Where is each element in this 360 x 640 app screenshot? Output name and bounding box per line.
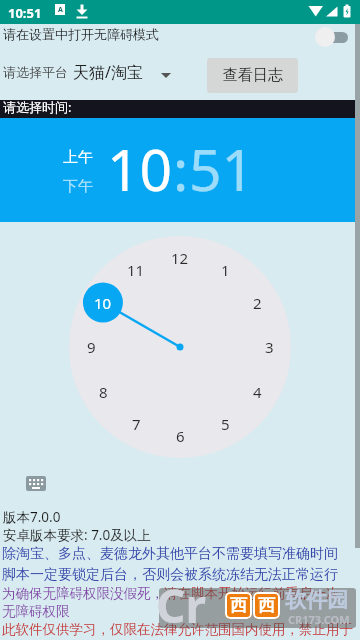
staticText: 3 xyxy=(265,337,274,357)
button[interactable]: 7 xyxy=(122,412,150,436)
button[interactable]: 下午 xyxy=(0,0,30,19)
staticText: 软件园 xyxy=(285,587,348,613)
button[interactable]: 4 xyxy=(243,380,271,404)
staticText: 除淘宝、多点、麦德龙外其他平台不需要填写准确时间 xyxy=(2,545,338,563)
staticText: 10 xyxy=(94,293,112,313)
staticText: 12 xyxy=(171,248,189,268)
staticText: 5 xyxy=(221,414,230,434)
button[interactable] xyxy=(310,24,355,50)
staticText: 为确保无障碍权限没假死，请在脚本开始运行前重启一次 xyxy=(2,585,340,602)
button[interactable]: 9 xyxy=(77,335,105,359)
button[interactable]: 8 xyxy=(89,380,117,404)
staticText: 11 xyxy=(127,260,145,280)
staticText: CR173.COM xyxy=(288,612,350,627)
staticText: 2 xyxy=(253,293,262,313)
button[interactable]: 查看日志 xyxy=(207,58,298,93)
staticText: 7 xyxy=(132,414,141,434)
staticText: 6 xyxy=(176,426,185,446)
button[interactable]: 天猫/淘宝 xyxy=(70,56,180,90)
button[interactable]: 11 xyxy=(122,258,150,282)
staticText: : xyxy=(173,130,189,208)
staticText: 无障碍权限 xyxy=(2,603,70,620)
staticText: 4 xyxy=(253,382,262,402)
staticText: 版本7.0.0 xyxy=(3,508,61,526)
button[interactable]: 10 xyxy=(107,130,173,208)
staticText: 请在设置中打开无障碍模式 xyxy=(3,26,159,42)
staticText: 请选择平台 xyxy=(3,64,68,80)
button[interactable]: 10 xyxy=(89,291,117,315)
staticText: 此软件仅供学习，仅限在法律允许范围国内使用，禁止用于 xyxy=(2,621,353,638)
button[interactable]: 2 xyxy=(243,291,271,315)
button[interactable]: 1 xyxy=(211,258,239,282)
button[interactable]: 上午 xyxy=(0,0,30,19)
staticText: 查看日志 xyxy=(223,66,283,85)
staticText: 西 xyxy=(258,595,275,616)
button[interactable]: 12 xyxy=(166,246,194,270)
button[interactable]: 5 xyxy=(211,412,239,436)
button[interactable]: 51 xyxy=(189,130,255,208)
staticText: 8 xyxy=(99,382,108,402)
button[interactable]: 3 xyxy=(255,335,283,359)
staticText: A xyxy=(58,5,63,15)
staticText: 西 xyxy=(230,595,247,616)
staticText: 1 xyxy=(221,260,230,280)
staticText: 安卓版本要求: 7.0及以上 xyxy=(3,526,151,544)
staticText: 请选择时间: xyxy=(3,98,72,116)
staticText: 天猫/淘宝 xyxy=(73,61,143,83)
staticText: 9 xyxy=(87,337,96,357)
staticText: 10:51 xyxy=(8,4,42,22)
staticText: 脚本一定要锁定后台，否则会被系统冻结无法正常运行 xyxy=(2,566,338,584)
button[interactable]: 6 xyxy=(166,424,194,448)
staticText: Cr xyxy=(156,574,207,637)
